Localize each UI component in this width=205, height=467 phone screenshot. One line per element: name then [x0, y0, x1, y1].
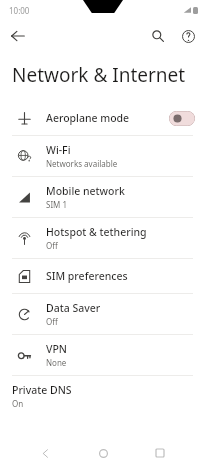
button[interactable]: Mobile network — [0, 177, 205, 217]
button[interactable]: Aeroplane mode — [0, 101, 205, 135]
staticText: SIM preferences — [46, 269, 128, 283]
button[interactable]: Home — [90, 440, 116, 466]
button[interactable]: VPN — [0, 335, 205, 375]
button[interactable]: Back — [4, 22, 32, 50]
staticText: Wi-Fi — [46, 143, 71, 157]
staticText: Aeroplane mode — [46, 111, 130, 125]
button[interactable]: Data Saver — [0, 294, 205, 334]
button[interactable]: SIM preferences — [0, 259, 205, 293]
button[interactable]: Back — [32, 440, 58, 466]
button[interactable]: Search — [145, 23, 171, 49]
staticText: Mobile network — [46, 184, 125, 198]
button[interactable]: Aeroplane mode toggle — [169, 111, 195, 126]
staticText: 10:00 — [9, 5, 30, 16]
staticText: Private DNS — [12, 383, 72, 397]
staticText: VPN — [46, 342, 68, 356]
button[interactable]: Recents — [147, 440, 173, 466]
button[interactable]: Help — [175, 23, 201, 49]
staticText: Network & Internet — [12, 62, 186, 88]
staticText: Networks available — [46, 158, 118, 169]
button[interactable]: Private DNS — [0, 376, 205, 416]
staticText: Off — [46, 316, 58, 327]
staticText: None — [46, 357, 67, 368]
staticText: SIM 1 — [46, 199, 68, 210]
button[interactable]: Hotspot & tethering — [0, 218, 205, 258]
staticText: On — [12, 398, 24, 409]
staticText: Off — [46, 240, 58, 251]
button[interactable]: Wi-Fi — [0, 136, 205, 176]
staticText: Data Saver — [46, 301, 101, 315]
staticText: Hotspot & tethering — [46, 225, 147, 239]
